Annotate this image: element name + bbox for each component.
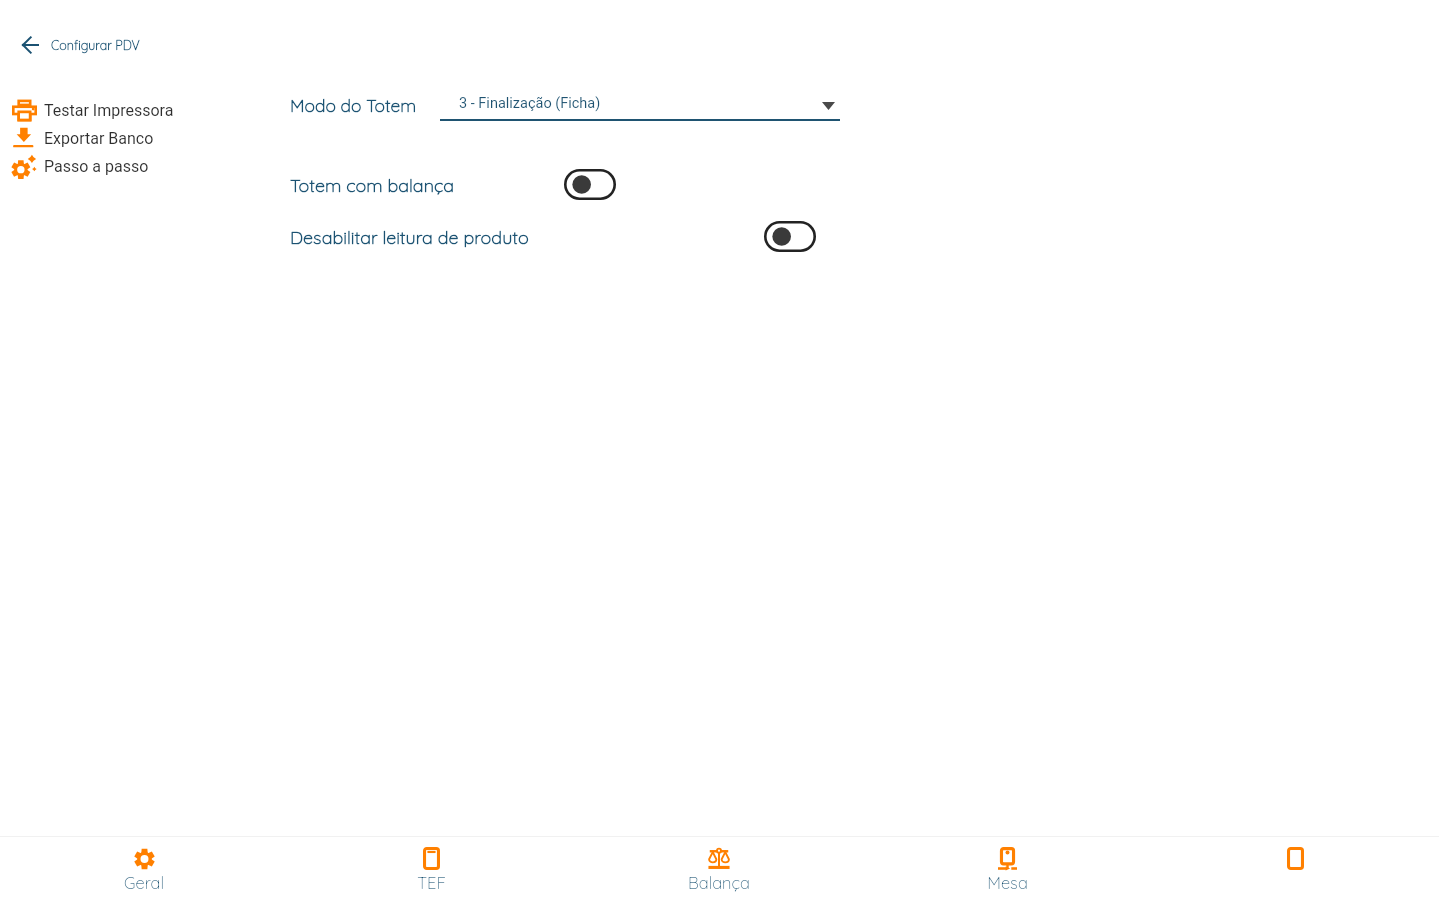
staticText: TEF — [417, 872, 446, 893]
button[interactable]: Balança — [575, 837, 863, 899]
button[interactable]: TEF — [287, 837, 575, 899]
button[interactable]: Passo a passo — [9, 152, 149, 180]
staticText: Exportar Banco — [44, 129, 154, 148]
staticText: Balança — [688, 872, 750, 893]
staticText: Desabilitar leitura de produto — [290, 226, 529, 249]
staticText: Modo do Totem — [290, 94, 417, 116]
staticText: Totem com balança — [290, 174, 455, 197]
button[interactable]: Modo do Totem — [440, 92, 840, 122]
staticText: Passo a passo — [44, 157, 149, 176]
button[interactable]: Testar Impressora — [9, 96, 174, 124]
button[interactable]: Mesa — [863, 837, 1151, 899]
button[interactable]: Desabilitar leitura de produto, desligad… — [764, 221, 816, 252]
button[interactable]: Mais — [1151, 837, 1439, 899]
button[interactable]: Back — [12, 27, 48, 63]
staticText: Testar Impressora — [44, 101, 174, 120]
staticText: Mesa — [987, 872, 1028, 893]
button[interactable]: Totem com balança, desligado — [564, 169, 616, 200]
staticText: Configurar PDV — [51, 37, 140, 53]
button[interactable]: Geral — [0, 837, 287, 899]
button[interactable]: Exportar Banco — [9, 124, 154, 152]
staticText: 3 - Finalização (Ficha) — [459, 95, 601, 112]
staticText: Geral — [124, 872, 164, 893]
